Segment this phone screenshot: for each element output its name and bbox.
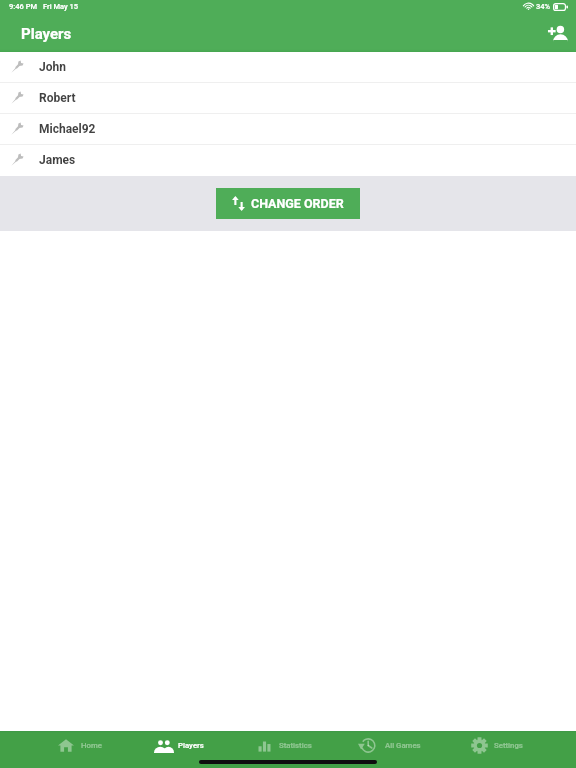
staticText: Players	[178, 741, 204, 750]
staticText: All Games	[385, 741, 421, 750]
button[interactable]: Statistics	[257, 734, 312, 757]
button[interactable]: Settings	[471, 734, 523, 757]
button[interactable]: Add player	[546, 22, 570, 43]
button[interactable]: Home	[58, 734, 102, 757]
button[interactable]: James	[0, 145, 576, 176]
staticText: Robert	[39, 91, 76, 105]
button[interactable]: CHANGE ORDER	[216, 188, 360, 219]
staticText: 34%	[536, 2, 551, 11]
staticText: Settings	[494, 741, 523, 750]
staticText: Players	[21, 25, 72, 43]
button[interactable]: Michael92	[0, 114, 576, 145]
staticText: 9:46 PM	[9, 2, 37, 11]
button[interactable]: All Games	[358, 734, 421, 757]
staticText: CHANGE ORDER	[251, 196, 344, 211]
button[interactable]: Robert	[0, 83, 576, 114]
staticText: Michael92	[39, 122, 96, 136]
button[interactable]: Players	[154, 734, 204, 757]
staticText: Fri May 15	[43, 2, 79, 11]
staticText: James	[39, 153, 76, 167]
staticText: Statistics	[279, 741, 312, 750]
button[interactable]: John	[0, 52, 576, 83]
staticText: John	[39, 60, 66, 74]
staticText: Home	[81, 741, 102, 750]
